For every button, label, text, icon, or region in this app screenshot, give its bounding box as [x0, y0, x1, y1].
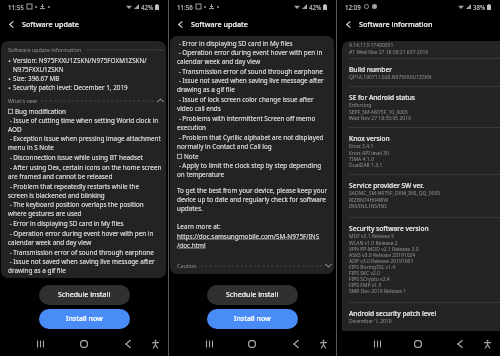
staticText: Knox version [349, 134, 390, 143]
staticText: - The keyboard position overlaps the pos… [8, 200, 144, 218]
staticText: SAOMC_SM-N975F_OXM_INS_QQ_0005 RIZBN74H0… [349, 190, 441, 210]
staticText: Knox 3.4.1 Knox API level 30 TIMA 4.1.0 … [349, 143, 389, 169]
staticText: - Exception issue when pressing image at… [8, 134, 161, 152]
button[interactable]: Home [70, 331, 98, 356]
staticText: Software information [359, 19, 433, 29]
staticText: Software update [191, 19, 248, 29]
staticText: To get the best from your device, please… [177, 186, 328, 213]
staticText: Install now [66, 314, 103, 324]
staticText: 42% [141, 3, 154, 11]
staticText: QP1A.190711.020.N975FXXU1ZSKN [349, 74, 432, 81]
button[interactable]: Android security patch level [342, 303, 500, 330]
staticText: - After using Dex, certain icons on the … [8, 163, 162, 181]
staticText: - Problem that repeatedly restarts while… [8, 182, 140, 200]
button[interactable]: Navigate up [0, 15, 22, 33]
staticText: - Issue not saved when saving live messa… [177, 76, 324, 94]
staticText: MDF v3.1 Release 5 WLAN v1.0 Release 2 V… [349, 233, 419, 295]
staticText: Schedule install [58, 290, 111, 300]
staticText: Software update [22, 19, 79, 29]
button[interactable]: Install now [207, 309, 298, 329]
staticText: https://doc.samsungmobile.com/SM-N975F/I… [177, 232, 320, 250]
staticText: 38% [473, 3, 486, 11]
staticText: Install now [234, 314, 271, 324]
staticText: Security patch level: December 1, 2019 [13, 83, 128, 92]
button[interactable]: Navigate up [337, 15, 359, 33]
button[interactable]: What's new [8, 95, 164, 106]
button[interactable]: SE for Android status [342, 87, 500, 127]
button[interactable]: Knox version [342, 128, 500, 174]
staticText: - Error in displaying SD card in My file… [177, 39, 293, 48]
staticText: - Operation error during event hover wit… [177, 48, 323, 66]
button[interactable]: Schedule install [207, 285, 298, 305]
staticText: - Operation error during event hover wit… [8, 229, 154, 247]
button[interactable]: Home [238, 331, 266, 356]
button[interactable]: Recent apps [195, 331, 223, 356]
button[interactable]: Navigate up [169, 15, 191, 33]
staticText: Schedule install [226, 290, 279, 300]
button[interactable]: Install now [39, 309, 130, 329]
button[interactable]: Accessibility [142, 331, 168, 356]
staticText: What's new [8, 97, 37, 104]
staticText: - Transmission error of sound through ea… [8, 248, 154, 257]
button[interactable]: Back [446, 331, 474, 356]
button[interactable]: Accessibility [310, 331, 336, 356]
staticText: Size: 396.67 MB [13, 74, 60, 83]
button[interactable]: Back [114, 331, 142, 356]
staticText: 11:55 [8, 3, 24, 11]
staticText: 4.14.113-17400031 #1 Wed Nov 27 18:38:21… [349, 42, 429, 56]
staticText: Security software version [349, 224, 429, 233]
staticText: Note [184, 152, 199, 161]
staticText: - Problem that Cyrillic alphabet are not… [177, 133, 324, 151]
staticText: 11:56 [177, 3, 193, 11]
button[interactable]: Home [404, 331, 432, 356]
button[interactable]: Software update information [8, 44, 164, 55]
staticText: 42% [309, 3, 322, 11]
staticText: SE for Android status [349, 93, 416, 102]
staticText: - Problems with intermittent Screen off … [177, 114, 316, 132]
staticText: Software update information [8, 46, 82, 53]
staticText: December 1, 2019 [349, 318, 392, 325]
staticText: - Issue not saved when saving live messa… [8, 257, 155, 275]
button[interactable]: Recent apps [26, 331, 54, 356]
staticText: Bug modification [15, 107, 67, 116]
button[interactable]: Security software version [342, 218, 500, 302]
staticText: Build number [349, 65, 392, 74]
staticText: - Disconnection issue while using BT hea… [8, 153, 143, 162]
button[interactable]: Back [282, 331, 310, 356]
staticText: Learn more at: [177, 222, 221, 231]
button[interactable]: Schedule install [39, 285, 130, 305]
staticText: 12:09 [345, 3, 361, 11]
staticText: - Transmission error of sound through ea… [177, 67, 323, 76]
staticText: Android security patch level [349, 309, 437, 318]
staticText: - Apply to limit the clock step by step … [177, 161, 322, 179]
staticText: - Issue of cutting time when setting Wor… [8, 116, 159, 134]
staticText: Caution [177, 262, 197, 269]
button[interactable]: Build number [342, 59, 500, 86]
staticText: - Issue of lock screen color change issu… [177, 95, 314, 113]
staticText: Enforcing SEPF_SM-N975F_10_0005 Wed Nov … [349, 102, 411, 122]
staticText: - Error in displaying SD card in My file… [8, 219, 124, 228]
button[interactable]: Accessibility [474, 331, 500, 356]
button[interactable]: Caution [177, 260, 332, 271]
staticText: Service provider SW ver. [349, 181, 424, 190]
button[interactable]: Service provider SW ver. [342, 175, 500, 217]
staticText: Version: N975FXXU1ZSKN/N975FOXM1ZSKN/N97… [13, 56, 164, 74]
button[interactable]: Recent apps [363, 331, 391, 356]
